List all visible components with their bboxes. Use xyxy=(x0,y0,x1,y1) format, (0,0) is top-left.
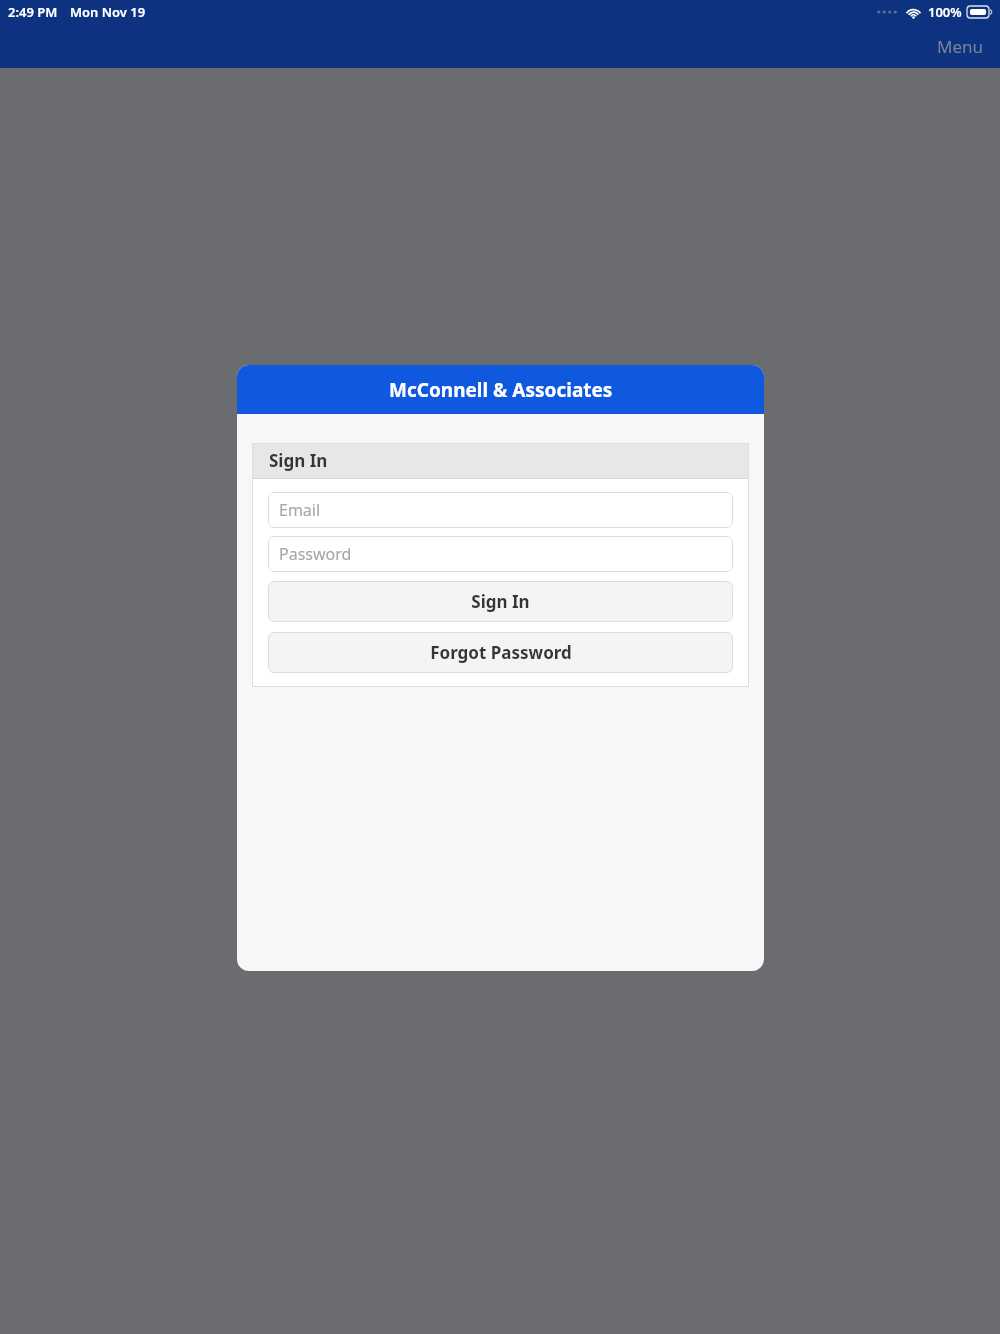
staticText: Menu xyxy=(937,35,984,58)
button[interactable]: Forgot Password xyxy=(268,632,733,673)
staticText: Email xyxy=(279,499,321,521)
button[interactable]: Sign In xyxy=(268,581,733,622)
staticText: Forgot Password xyxy=(430,641,572,664)
staticText: 100% xyxy=(928,3,962,21)
staticText: Mon Nov 19 xyxy=(70,3,146,21)
staticText: 2:49 PM xyxy=(8,3,58,21)
staticText: McConnell & Associates xyxy=(389,377,613,403)
button[interactable]: Menu xyxy=(921,29,1000,64)
button[interactable]: Email xyxy=(268,492,733,528)
staticText: Sign In xyxy=(471,590,530,613)
staticText: Sign In xyxy=(269,449,328,472)
staticText: Password xyxy=(279,543,352,565)
button[interactable]: Password xyxy=(268,536,733,572)
